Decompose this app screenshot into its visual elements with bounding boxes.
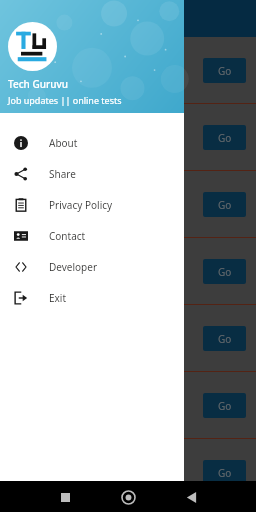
staticText: Share: [49, 167, 76, 181]
button[interactable]: Go: [203, 326, 246, 351]
button[interactable]: Exit: [0, 282, 184, 313]
button[interactable]: Share: [0, 158, 184, 189]
staticText: Go: [218, 332, 232, 346]
button[interactable]: Privacy Policy: [0, 189, 184, 220]
staticText: Go: [218, 131, 232, 145]
button[interactable]: Contact: [0, 220, 184, 251]
staticText: Tech Guruvu: [8, 77, 69, 91]
button[interactable]: About: [0, 127, 184, 158]
staticText: Go: [218, 198, 232, 212]
button[interactable]: Home: [115, 484, 141, 510]
staticText: Go: [218, 466, 232, 480]
staticText: Contact: [49, 229, 86, 243]
button[interactable]: Tech Guruvu logo: [8, 22, 57, 71]
staticText: Privacy Policy: [49, 198, 113, 212]
button[interactable]: Go: [203, 393, 246, 418]
button[interactable]: Go: [203, 125, 246, 150]
staticText: Go: [218, 64, 232, 78]
button[interactable]: Go: [203, 259, 246, 284]
button[interactable]: Recent apps: [52, 484, 78, 510]
button[interactable]: Go: [203, 460, 246, 485]
staticText: Exit: [49, 291, 67, 305]
button[interactable]: Go: [203, 192, 246, 217]
button[interactable]: Back: [178, 484, 204, 510]
staticText: About: [49, 136, 78, 150]
staticText: Developer: [49, 260, 98, 274]
staticText: Go: [218, 265, 232, 279]
staticText: Job updates || online tests: [8, 94, 122, 106]
button[interactable]: Go: [203, 58, 246, 83]
staticText: Go: [218, 399, 232, 413]
button[interactable]: Developer: [0, 251, 184, 282]
